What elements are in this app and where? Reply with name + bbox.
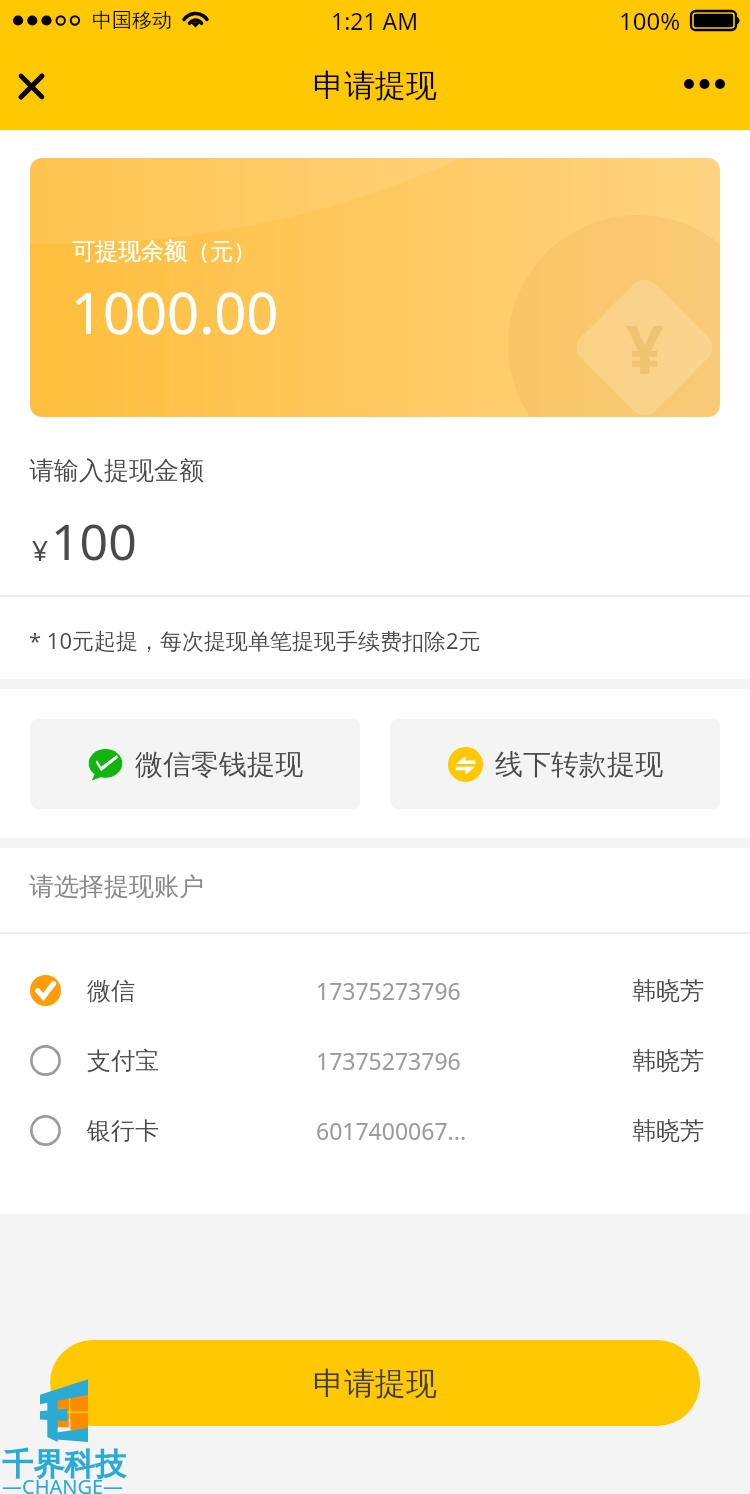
button[interactable]: 银行卡 — [0, 1095, 750, 1165]
staticText: 韩晓芳 — [632, 976, 708, 1006]
staticText: 千界科技 — [2, 1445, 126, 1484]
staticText: 100% — [619, 4, 681, 37]
staticText: —CHANGE— — [2, 1473, 124, 1494]
staticText: * 10元起提，每次提现单笔提现手续费扣除2元 — [29, 625, 481, 655]
staticText: 17375273796 — [316, 975, 632, 1006]
button[interactable]: 微信 — [0, 955, 750, 1025]
staticText: 韩晓芳 — [632, 1046, 708, 1076]
staticText: 100 — [51, 507, 137, 575]
staticText: 微信零钱提现 — [135, 747, 303, 782]
button[interactable]: 线下转款提现 — [390, 719, 720, 809]
staticText: 申请提现 — [313, 66, 437, 105]
staticText: 17375273796 — [316, 1045, 632, 1076]
staticText: 申请提现 — [313, 1364, 437, 1403]
staticText: 请输入提现金额 — [29, 455, 204, 486]
button[interactable]: 申请提现 — [50, 1340, 700, 1426]
staticText: 可提现余额（元） — [72, 237, 256, 266]
button[interactable]: More options — [667, 49, 741, 119]
staticText: ¥ — [626, 303, 664, 393]
staticText: 6017400067... — [316, 1115, 632, 1146]
staticText: 韩晓芳 — [632, 1116, 708, 1146]
staticText: ¥ — [32, 531, 49, 569]
staticText: 线下转款提现 — [495, 747, 663, 782]
button[interactable]: Close — [0, 55, 62, 117]
staticText: 请选择提现账户 — [29, 871, 204, 902]
staticText: 微信 — [87, 976, 316, 1006]
button[interactable]: 支付宝 — [0, 1025, 750, 1095]
staticText: 1:21 AM — [331, 5, 419, 36]
staticText: 中国移动 — [92, 8, 172, 33]
button[interactable]: 微信零钱提现 — [30, 719, 360, 809]
staticText: 1000.00 — [71, 274, 279, 350]
staticText: 银行卡 — [87, 1116, 316, 1146]
staticText: 支付宝 — [87, 1046, 316, 1076]
